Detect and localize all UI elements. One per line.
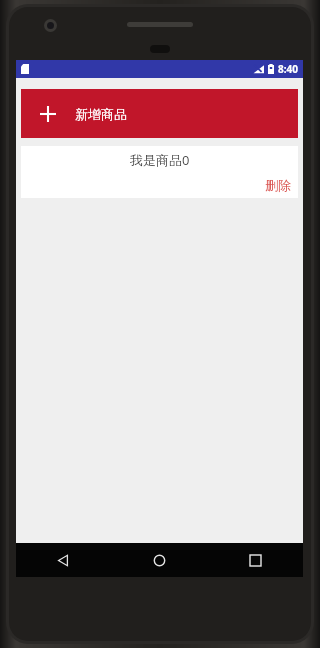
staticText: 我是商品0	[130, 151, 190, 169]
other: Add	[40, 106, 56, 122]
button[interactable]: 删除	[263, 175, 293, 195]
button[interactable]: Add	[21, 89, 298, 138]
staticText: 8:40	[278, 62, 298, 76]
staticText: 新增商品	[75, 106, 127, 122]
button[interactable]: Back	[16, 543, 111, 577]
button[interactable]: Recent apps	[207, 543, 303, 577]
button[interactable]: 我是商品0	[21, 146, 298, 198]
staticText: 删除	[265, 177, 291, 193]
button[interactable]: Home	[111, 543, 207, 577]
